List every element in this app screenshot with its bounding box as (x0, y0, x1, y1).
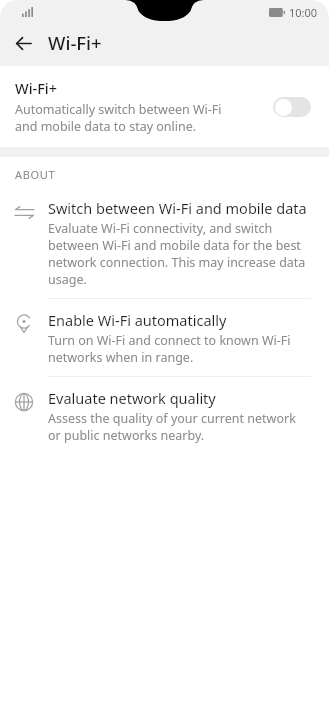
button[interactable]: Back (8, 28, 38, 58)
staticText: ABOUT (15, 167, 56, 182)
staticText: Evaluate network quality (48, 388, 216, 408)
other: Enable Wi-Fi automatically (12, 312, 36, 336)
staticText: Evaluate Wi-Fi connectivity, and switch … (48, 220, 311, 288)
button[interactable]: Switch between Wi-Fi and mobile data (0, 198, 329, 310)
button[interactable]: Enable Wi-Fi automatically (0, 310, 329, 388)
button[interactable]: Wi-Fi+ toggle, off (269, 93, 315, 121)
button[interactable]: Wi-Fi+ (0, 66, 329, 147)
staticText: 10:00 (289, 5, 318, 20)
staticText: Wi-Fi+ (15, 78, 58, 98)
other: Switch between Wi-Fi and mobile data (12, 200, 36, 224)
button[interactable]: Evaluate network quality (0, 388, 329, 454)
staticText: Enable Wi-Fi automatically (48, 310, 227, 330)
staticText: Turn on Wi-Fi and connect to known Wi-Fi… (48, 332, 311, 366)
other: Evaluate network quality (12, 390, 36, 414)
staticText: Assess the quality of your current netwo… (48, 410, 311, 444)
staticText: Automatically switch between Wi-Fi and m… (15, 101, 233, 135)
staticText: Wi-Fi+ (48, 30, 102, 55)
staticText: Switch between Wi-Fi and mobile data (48, 198, 307, 218)
